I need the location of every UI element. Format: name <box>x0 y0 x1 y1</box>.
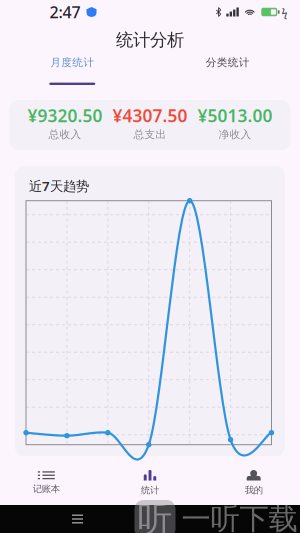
button[interactable]: 分类统计 <box>150 56 300 85</box>
button[interactable]: 记账本 <box>0 463 98 503</box>
staticText: 月度统计 <box>50 56 94 69</box>
staticText: ϟ <box>281 5 287 19</box>
staticText: 总收入 <box>48 128 81 141</box>
staticText: 听 <box>137 498 172 533</box>
button[interactable]: 我的 <box>202 463 300 503</box>
staticText: 记账本 <box>33 483 60 495</box>
staticText: 总支出 <box>133 128 166 141</box>
staticText: ¥9320.50 <box>27 104 102 127</box>
button[interactable]: 月度统计 <box>0 56 150 85</box>
button[interactable]: 统计 <box>98 463 202 503</box>
staticText: ¥5013.00 <box>197 104 272 127</box>
staticText: 净收入 <box>218 128 251 141</box>
staticText: 一听下载 <box>181 501 297 533</box>
staticText: 统计 <box>141 484 159 496</box>
staticText: 近7天趋势 <box>29 177 89 195</box>
staticText: ¥4307.50 <box>112 104 187 127</box>
staticText: 2:47 <box>49 1 80 23</box>
staticText: 我的 <box>245 484 263 496</box>
staticText: 统计分析 <box>116 29 184 51</box>
button[interactable]: Menu <box>60 505 94 533</box>
staticText: 分类统计 <box>206 56 250 69</box>
